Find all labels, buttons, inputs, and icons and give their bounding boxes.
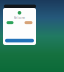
button[interactable]: Navigation bar [4, 5, 36, 8]
button[interactable]: Primary action [6, 21, 13, 24]
button[interactable]: Continue [5, 39, 34, 42]
staticText: Welcome [13, 16, 25, 20]
button[interactable]: Secondary action [24, 21, 32, 24]
